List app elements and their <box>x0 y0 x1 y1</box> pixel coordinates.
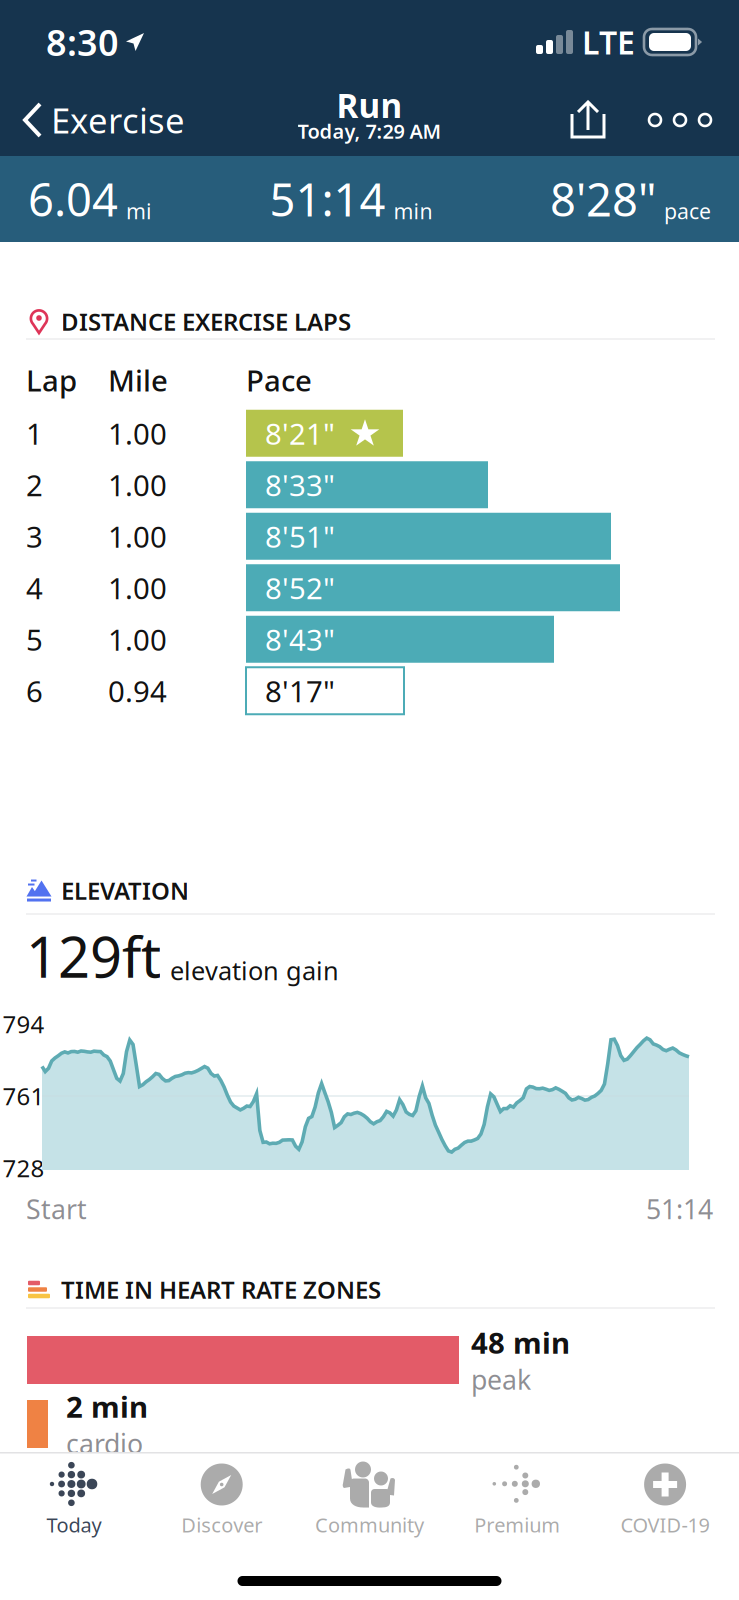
button[interactable]: Premium <box>443 1453 591 1551</box>
staticText: min <box>393 197 432 225</box>
button[interactable]: Today <box>0 1453 148 1551</box>
staticText: 6 <box>26 671 43 710</box>
staticText: 48 min <box>471 1323 570 1362</box>
staticText: mi <box>126 197 152 225</box>
staticText: Start <box>26 1191 87 1227</box>
staticText: Community <box>315 1511 424 1538</box>
staticText: Pace <box>246 360 312 399</box>
staticText: Run <box>336 83 402 127</box>
button[interactable]: COVID-19 <box>591 1453 739 1551</box>
staticText: 129ft <box>26 919 161 993</box>
staticText: cardio <box>66 1426 143 1461</box>
button[interactable]: Share <box>545 86 631 154</box>
staticText: 761 <box>2 1080 44 1112</box>
button[interactable]: Discover <box>148 1453 296 1551</box>
staticText: DISTANCE EXERCISE LAPS <box>61 306 351 337</box>
staticText: 51:14 <box>646 1191 713 1227</box>
staticText: pace <box>664 197 711 225</box>
staticText: 5 <box>26 620 43 659</box>
staticText: 1 <box>26 414 43 453</box>
staticText: 728 <box>2 1152 44 1184</box>
staticText: TIME IN HEART RATE ZONES <box>61 1274 381 1305</box>
staticText: 8'17" <box>265 671 335 710</box>
staticText: 0.94 <box>108 671 167 710</box>
staticText: Exercise <box>51 97 185 143</box>
staticText: 51:14 <box>269 169 385 229</box>
staticText: 8'33" <box>265 465 335 504</box>
staticText: 8'52" <box>265 568 335 607</box>
staticText: 1.00 <box>108 620 167 659</box>
staticText: elevation gain <box>170 953 339 987</box>
staticText: Today <box>46 1511 101 1538</box>
staticText: 8'21" <box>265 414 335 453</box>
staticText: Discover <box>181 1511 262 1538</box>
staticText: 4 <box>26 568 43 607</box>
button[interactable]: Exercise <box>0 86 201 154</box>
staticText: ELEVATION <box>61 875 189 906</box>
staticText: 2 <box>26 465 43 504</box>
staticText: 8'51" <box>265 517 335 556</box>
staticText: 1.00 <box>108 414 167 453</box>
staticText: 1.00 <box>108 568 167 607</box>
staticText: 8'43" <box>265 620 335 659</box>
staticText: 2 min <box>66 1387 148 1426</box>
staticText: 6.04 <box>28 169 118 229</box>
staticText: 1.00 <box>108 517 167 556</box>
button[interactable]: More options <box>631 86 739 154</box>
staticText: 794 <box>2 1008 44 1040</box>
button[interactable]: Community <box>296 1453 443 1551</box>
staticText: Lap <box>26 360 77 399</box>
staticText: Mile <box>108 360 168 399</box>
staticText: 1.00 <box>108 465 167 504</box>
staticText: peak <box>471 1362 531 1397</box>
staticText: 8'28" <box>550 169 656 229</box>
staticText: LTE <box>582 21 635 63</box>
staticText: COVID-19 <box>621 1511 710 1538</box>
staticText: Premium <box>474 1511 560 1538</box>
staticText: 3 <box>26 517 43 556</box>
staticText: 8:30 <box>46 18 119 66</box>
staticText: Today, 7:29 AM <box>297 118 441 144</box>
